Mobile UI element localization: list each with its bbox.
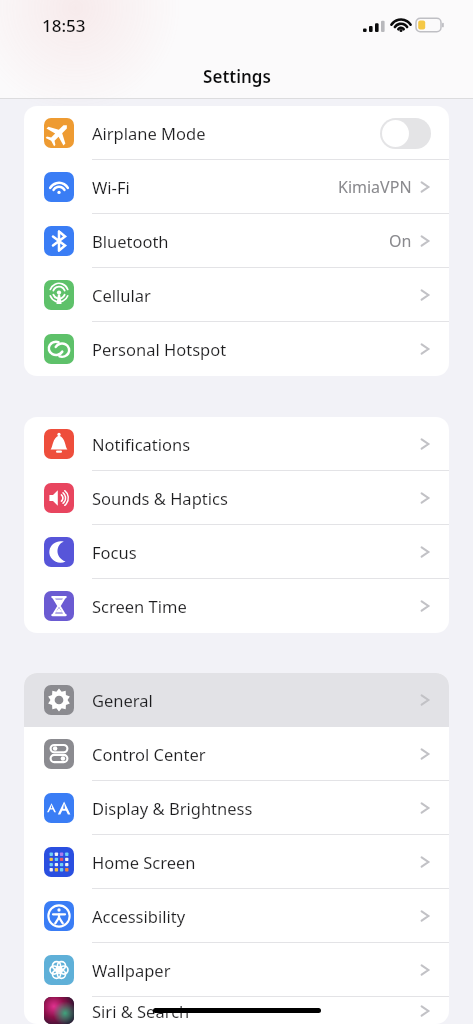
button[interactable]: Cellular (24, 268, 449, 322)
staticText: Notifications (92, 433, 191, 455)
staticText: KimiaVPN (338, 176, 412, 198)
button[interactable]: Wallpaper (24, 943, 449, 997)
button[interactable]: Airplane Mode toggle (380, 118, 431, 149)
button[interactable]: Wi-Fi (24, 160, 449, 214)
staticText: Wi-Fi (92, 176, 130, 198)
staticText: Display & Brightness (92, 797, 253, 819)
button[interactable]: Sounds & Haptics (24, 471, 449, 525)
staticText: Home Screen (92, 851, 196, 873)
button[interactable]: Focus (24, 525, 449, 579)
staticText: Personal Hotspot (92, 338, 227, 360)
staticText: General (92, 689, 153, 711)
staticText: Settings (203, 65, 271, 88)
button[interactable]: Bluetooth (24, 214, 449, 268)
staticText: Bluetooth (92, 230, 169, 252)
button[interactable]: Home Screen (24, 835, 449, 889)
staticText: On (389, 230, 412, 252)
staticText: Sounds & Haptics (92, 487, 228, 509)
staticText: 18:53 (42, 14, 86, 37)
staticText: Focus (92, 541, 137, 563)
button[interactable]: Display & Brightness (24, 781, 449, 835)
button[interactable]: Airplane Mode (24, 106, 449, 160)
button[interactable]: Accessibility (24, 889, 449, 943)
staticText: Siri & Search (92, 1000, 190, 1022)
button[interactable]: Personal Hotspot (24, 322, 449, 376)
staticText: Wallpaper (92, 959, 171, 981)
staticText: Control Center (92, 743, 206, 765)
staticText: Cellular (92, 284, 151, 306)
button[interactable]: General (24, 673, 449, 727)
button[interactable]: Notifications (24, 417, 449, 471)
button[interactable]: Screen Time (24, 579, 449, 633)
staticText: Screen Time (92, 595, 187, 617)
staticText: Accessibility (92, 905, 186, 927)
staticText: Airplane Mode (92, 122, 206, 144)
button[interactable]: Siri & Search (24, 997, 449, 1024)
button[interactable]: Control Center (24, 727, 449, 781)
